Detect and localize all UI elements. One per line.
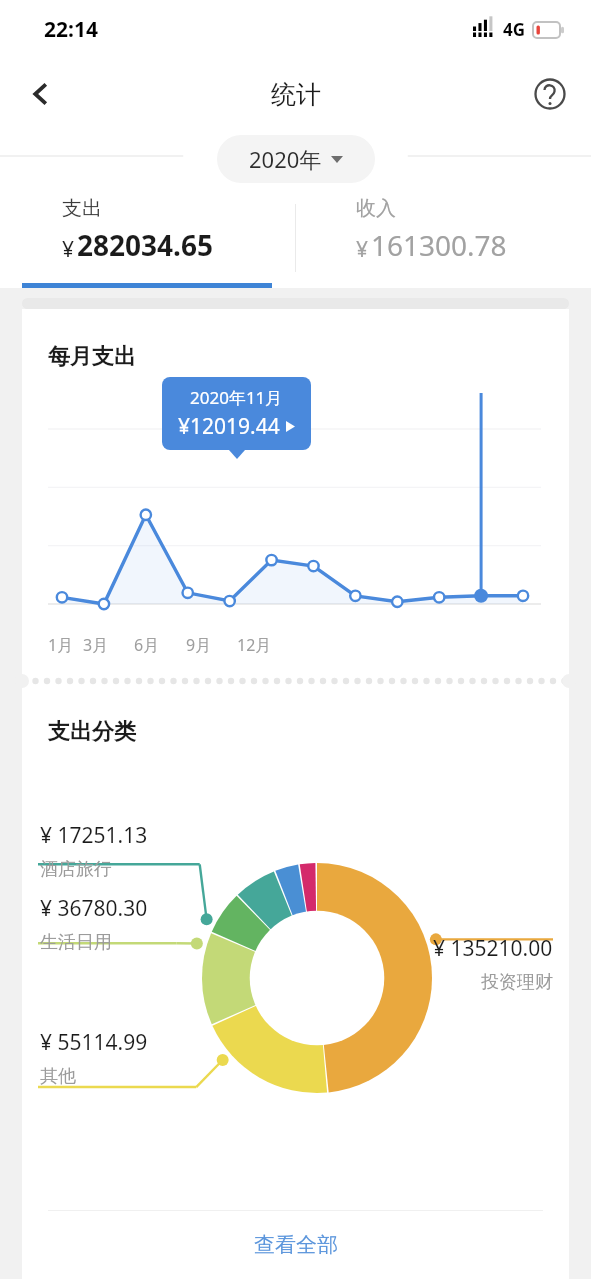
button[interactable]: 收入 <box>296 188 591 288</box>
button[interactable]: 查看全部 <box>22 1211 569 1279</box>
staticText: 1月 <box>48 634 74 656</box>
staticText: ¥ <box>62 235 75 264</box>
staticText: 支出 <box>62 196 102 221</box>
staticText: 收入 <box>356 196 396 221</box>
staticText: 投资理财 <box>481 971 553 994</box>
staticText: 2020年11月 <box>190 386 283 409</box>
staticText: 2020年 <box>249 144 322 174</box>
staticText: 22:14 <box>44 15 98 44</box>
staticText: ¥ <box>356 235 369 264</box>
staticText: 161300.78 <box>371 226 507 264</box>
staticText: 支出分类 <box>48 718 136 746</box>
button[interactable]: Back <box>16 69 66 119</box>
staticText: 查看全部 <box>254 1232 338 1258</box>
staticText: 每月支出 <box>48 343 136 371</box>
button[interactable]: 2020年 <box>217 135 375 183</box>
staticText: 4G <box>503 18 526 41</box>
button[interactable]: Help <box>525 69 575 119</box>
staticText: 其他 <box>40 1065 76 1088</box>
staticText: 9月 <box>186 634 212 656</box>
staticText: 3月 <box>83 634 109 656</box>
staticText: ¥12019.44 <box>178 412 280 441</box>
staticText: 12月 <box>237 634 272 656</box>
staticText: ¥ 17251.13 <box>40 821 148 850</box>
staticText: 统计 <box>271 79 321 110</box>
button[interactable]: 支出 <box>0 188 295 288</box>
staticText: 酒店旅行 <box>40 858 112 881</box>
staticText: 生活日用 <box>40 931 112 954</box>
staticText: ¥ 135210.00 <box>433 934 553 963</box>
staticText: 282034.65 <box>77 226 213 264</box>
staticText: ¥ 55114.99 <box>40 1028 148 1057</box>
staticText: 6月 <box>134 634 160 656</box>
staticText: ¥ 36780.30 <box>40 894 148 923</box>
